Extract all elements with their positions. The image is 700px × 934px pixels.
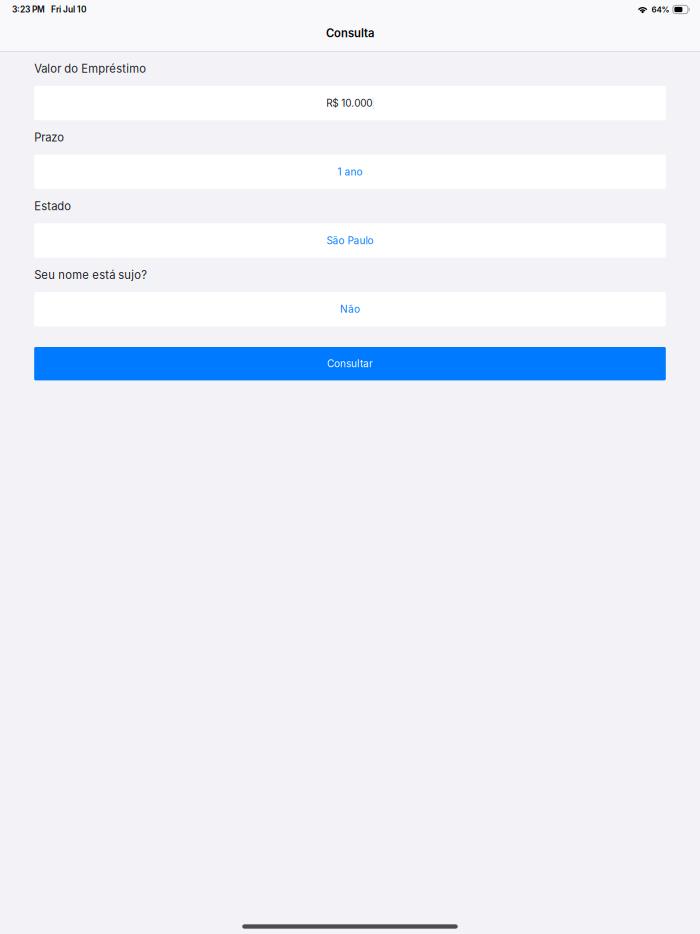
- staticText: Seu nome está sujo?: [34, 268, 147, 282]
- staticText: Consulta: [326, 26, 374, 40]
- button[interactable]: Não: [34, 292, 666, 326]
- button[interactable]: 1 ano: [34, 155, 666, 189]
- staticText: Estado: [34, 199, 71, 213]
- button[interactable]: R$ 10.000: [34, 86, 666, 120]
- staticText: Fri Jul 10: [51, 4, 87, 15]
- staticText: 64%: [651, 5, 669, 14]
- staticText: R$ 10.000: [326, 97, 372, 109]
- staticText: Valor do Empréstimo: [34, 62, 146, 76]
- staticText: 1 ano: [337, 166, 362, 178]
- staticText: Não: [340, 303, 360, 315]
- staticText: São Paulo: [326, 234, 373, 247]
- staticText: Consultar: [327, 358, 373, 370]
- staticText: Prazo: [34, 131, 64, 144]
- button[interactable]: Consultar: [34, 347, 666, 380]
- button[interactable]: São Paulo: [34, 223, 666, 258]
- staticText: 3:23 PM: [12, 4, 45, 15]
